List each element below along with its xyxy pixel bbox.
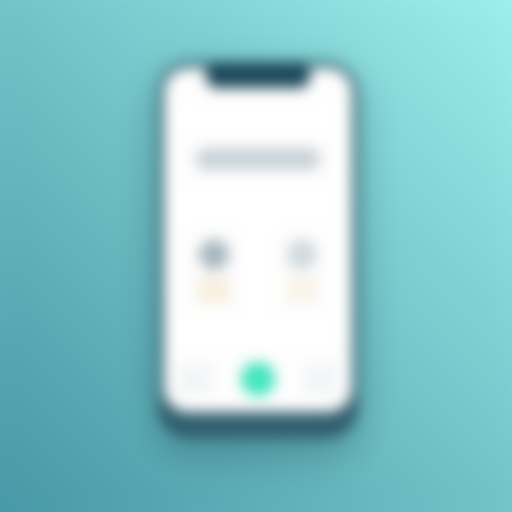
button[interactable] xyxy=(183,227,245,315)
button[interactable] xyxy=(271,227,333,315)
button[interactable]: Create xyxy=(227,362,289,396)
button[interactable]: Profile xyxy=(289,365,352,393)
button[interactable]: Library xyxy=(164,365,227,393)
